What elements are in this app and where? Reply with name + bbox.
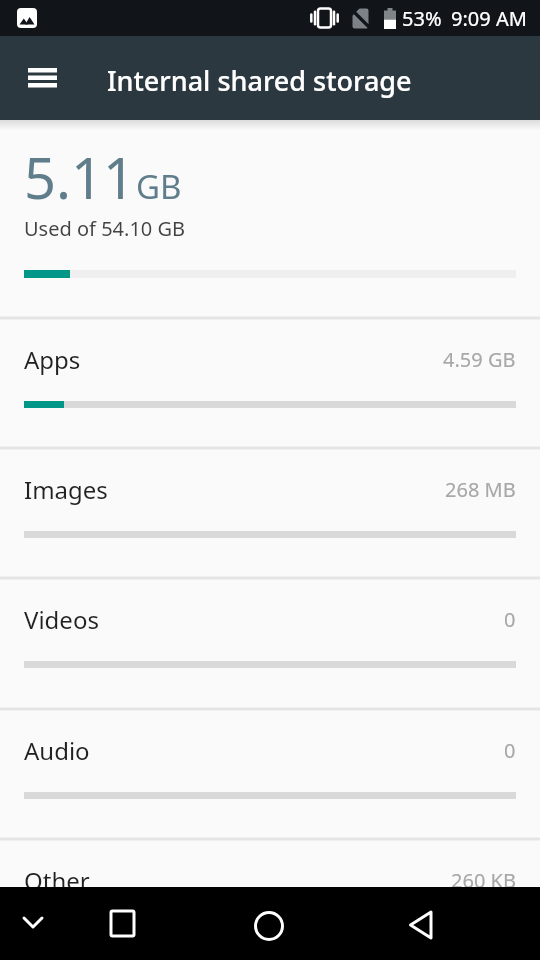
button[interactable]: Apps [24, 343, 516, 375]
staticText: 260 KB [451, 867, 516, 887]
staticText: Audio [24, 734, 90, 766]
staticText: Images [24, 473, 108, 505]
button[interactable]: Images [24, 473, 516, 505]
staticText: 53% [402, 5, 442, 32]
staticText: Apps [24, 343, 81, 375]
staticText: 5.11 [24, 139, 136, 215]
staticText: Internal shared storage [107, 62, 412, 99]
button[interactable]: Other [24, 864, 516, 887]
button[interactable] [135, 887, 270, 960]
staticText: Videos [24, 603, 99, 635]
staticText: 0 [504, 606, 516, 633]
button[interactable] [405, 887, 540, 960]
staticText: Other [24, 864, 90, 887]
staticText: 268 MB [445, 476, 516, 503]
staticText: 9:09 AM [451, 5, 527, 32]
button[interactable]: Videos [24, 603, 516, 635]
button[interactable] [0, 887, 135, 960]
staticText: 0 [504, 737, 516, 764]
button[interactable] [28, 68, 57, 88]
staticText: GB [136, 164, 182, 209]
button[interactable] [270, 887, 405, 960]
button[interactable]: Audio [24, 734, 516, 766]
staticText: 4.59 GB [443, 346, 516, 373]
staticText: Used of 54.10 GB [24, 215, 186, 242]
